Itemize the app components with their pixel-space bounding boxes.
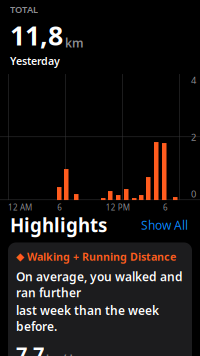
staticText: Yesterday xyxy=(10,54,60,68)
staticText: 11,8 xyxy=(10,17,63,53)
staticText: 12 PM xyxy=(106,202,130,213)
staticText: On average, you walked and ran further xyxy=(16,269,183,300)
staticText: 12 AM xyxy=(8,202,32,213)
staticText: 7,7 xyxy=(16,340,44,356)
staticText: TOTAL xyxy=(10,3,38,15)
staticText: km/day xyxy=(46,351,85,356)
staticText: Highlights xyxy=(10,213,107,237)
staticText: Walking + Running Distance xyxy=(27,249,176,264)
staticText: ◆ xyxy=(16,250,24,263)
staticText: 6 xyxy=(163,202,168,213)
staticText: 4 xyxy=(191,74,196,86)
staticText: km xyxy=(65,35,84,51)
staticText: 0 xyxy=(191,188,196,200)
button[interactable]: Show All xyxy=(139,218,190,232)
staticText: 6 xyxy=(57,202,62,213)
staticText: last week than the week before. xyxy=(16,302,159,334)
staticText: Show All xyxy=(141,217,188,233)
button[interactable]: ◆ xyxy=(8,242,192,356)
staticText: 2 xyxy=(191,131,196,143)
